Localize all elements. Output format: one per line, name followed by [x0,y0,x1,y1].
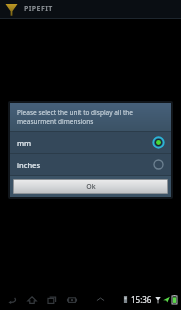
button[interactable]: Back [5,293,18,306]
staticText: 15:36 [131,294,152,305]
button[interactable]: Status [123,294,177,305]
staticText: Ok [86,182,96,192]
staticText: mm [17,138,32,148]
button[interactable]: Show notifications [94,293,107,306]
button[interactable]: Ok [14,180,167,193]
staticText: Please select the unit to display all th… [17,108,164,126]
staticText: inches [17,160,41,170]
button[interactable]: Screenshot [65,293,78,306]
button[interactable]: Recent apps [45,293,58,306]
staticText: PIPEFIT [24,4,53,14]
button[interactable]: inches [10,154,171,175]
button[interactable]: mm [10,132,171,153]
button[interactable]: Home [25,293,38,306]
